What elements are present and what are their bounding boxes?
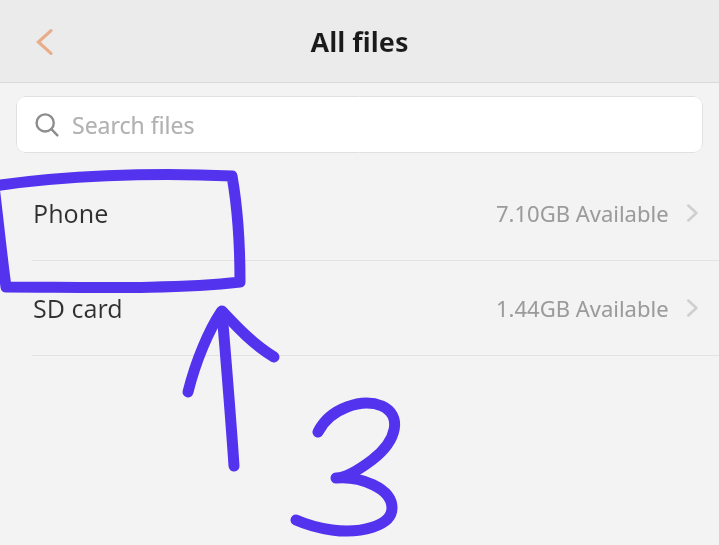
button[interactable]: Back: [14, 11, 76, 73]
staticText: SD card: [33, 291, 123, 325]
button[interactable]: Search files: [16, 96, 703, 153]
staticText: All files: [310, 23, 409, 60]
button[interactable]: SD card: [0, 261, 719, 355]
staticText: Search files: [72, 109, 195, 140]
staticText: 7.10GB Available: [496, 198, 669, 228]
button[interactable]: Phone: [0, 166, 719, 260]
staticText: Phone: [33, 196, 109, 230]
staticText: 1.44GB Available: [496, 293, 669, 323]
